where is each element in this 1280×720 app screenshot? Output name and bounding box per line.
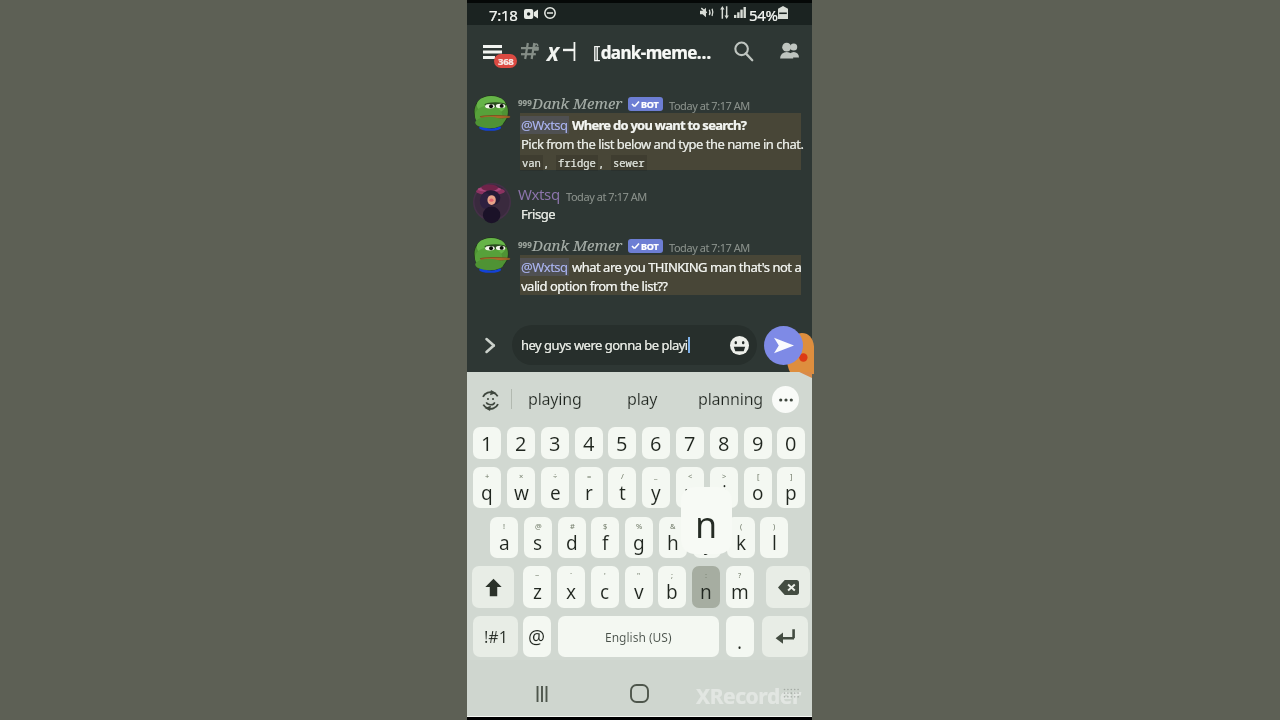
button[interactable]: c: [591, 566, 619, 608]
staticText: i: [722, 480, 727, 506]
button[interactable]: n: [692, 566, 720, 608]
button[interactable]: @: [523, 616, 551, 657]
staticText: _: [654, 471, 658, 481]
button[interactable]: i: [710, 467, 738, 508]
staticText: .: [737, 629, 743, 655]
staticText: 7: [684, 430, 696, 457]
staticText: hey guys were gonna be playi: [521, 336, 688, 354]
staticText: /: [621, 471, 624, 481]
button[interactable]: 2: [507, 427, 535, 459]
button[interactable]: x: [557, 566, 585, 608]
button[interactable]: Show member list: [771, 34, 805, 68]
button[interactable]: k: [727, 517, 755, 558]
staticText: y: [651, 480, 661, 506]
staticText: ~: [535, 570, 540, 580]
button[interactable]: Open channel drawer: [479, 40, 519, 70]
button[interactable]: d: [558, 517, 586, 558]
button[interactable]: h: [659, 517, 687, 558]
button[interactable]: 3: [541, 427, 569, 459]
button[interactable]: g: [625, 517, 653, 558]
staticText: f: [602, 530, 609, 556]
button[interactable]: 4: [575, 427, 603, 459]
staticText: ": [637, 570, 641, 580]
button[interactable]: playing: [514, 382, 596, 416]
button[interactable]: y: [642, 467, 670, 508]
button[interactable]: t: [608, 467, 636, 508]
button[interactable]: v: [625, 566, 653, 608]
button[interactable]: More suggestions: [772, 386, 799, 413]
button[interactable]: Backspace: [766, 566, 810, 608]
button[interactable]: s: [524, 517, 552, 558]
staticText: a: [499, 530, 510, 556]
button[interactable]: j: [693, 517, 721, 558]
staticText: Today at 7:17 AM: [566, 189, 647, 204]
button[interactable]: Open actions: [477, 332, 503, 358]
staticText: 368: [498, 55, 514, 68]
button[interactable]: f: [591, 517, 619, 558]
button[interactable]: planning: [688, 382, 773, 416]
button[interactable]: 1: [473, 427, 501, 459]
staticText: play: [627, 388, 658, 410]
staticText: @Wxtsq: [521, 258, 568, 276]
staticText: [: [757, 471, 760, 481]
staticText: 4: [583, 430, 595, 457]
staticText: 1: [481, 430, 493, 457]
staticText: w: [514, 480, 529, 506]
staticText: j: [705, 530, 710, 556]
button[interactable]: u: [676, 467, 704, 508]
button[interactable]: Shift: [472, 566, 514, 608]
staticText: Frisge: [521, 205, 556, 223]
button[interactable]: 0: [777, 427, 805, 459]
staticText: what are you THINKING man that's not a: [572, 258, 802, 276]
button[interactable]: Send message: [764, 326, 803, 365]
button[interactable]: .: [726, 616, 754, 657]
button[interactable]: Enter: [762, 616, 808, 657]
button[interactable]: q: [473, 467, 501, 508]
staticText: @: [535, 521, 542, 531]
button[interactable]: m: [726, 566, 754, 608]
button[interactable]: play: [606, 382, 678, 416]
button[interactable]: Recent apps: [527, 679, 557, 709]
button[interactable]: r: [575, 467, 603, 508]
staticText: l: [772, 530, 777, 556]
staticText: 999: [518, 239, 532, 250]
staticText: Dank Memer: [532, 93, 623, 113]
button[interactable]: !#1: [473, 616, 518, 657]
staticText: :: [705, 570, 708, 580]
button[interactable]: hey guys were gonna be playi: [512, 325, 757, 365]
staticText: t: [619, 480, 626, 506]
button[interactable]: 6: [642, 427, 670, 459]
button[interactable]: z: [523, 566, 551, 608]
staticText: van: [522, 156, 541, 170]
button[interactable]: 8: [710, 427, 738, 459]
button[interactable]: 9: [744, 427, 772, 459]
staticText: @Wxtsq: [521, 116, 568, 134]
button[interactable]: 5: [608, 427, 636, 459]
button[interactable]: a: [490, 517, 518, 558]
staticText: ÷: [553, 471, 558, 481]
staticText: x: [566, 579, 577, 605]
staticText: sewer: [613, 156, 645, 170]
staticText: 6: [650, 430, 662, 457]
button[interactable]: l: [760, 517, 788, 558]
staticText: `: [570, 570, 573, 580]
staticText: b: [666, 579, 678, 605]
button[interactable]: Sticker suggestions: [476, 386, 504, 414]
button[interactable]: English (US): [558, 616, 719, 657]
staticText: ?: [738, 570, 742, 580]
button[interactable]: Search: [726, 34, 760, 68]
button[interactable]: e: [541, 467, 569, 508]
button[interactable]: p: [777, 467, 805, 508]
button[interactable]: o: [744, 467, 772, 508]
button[interactable]: w: [507, 467, 535, 508]
staticText: X: [547, 41, 559, 67]
button[interactable]: Home: [624, 678, 654, 708]
staticText: r: [585, 480, 593, 506]
button[interactable]: 7: [676, 427, 704, 459]
staticText: 2: [515, 430, 527, 457]
staticText: @: [528, 624, 546, 650]
staticText: ;: [671, 570, 674, 580]
staticText: ): [773, 521, 776, 531]
button[interactable]: b: [658, 566, 686, 608]
staticText: BOT: [641, 240, 659, 252]
